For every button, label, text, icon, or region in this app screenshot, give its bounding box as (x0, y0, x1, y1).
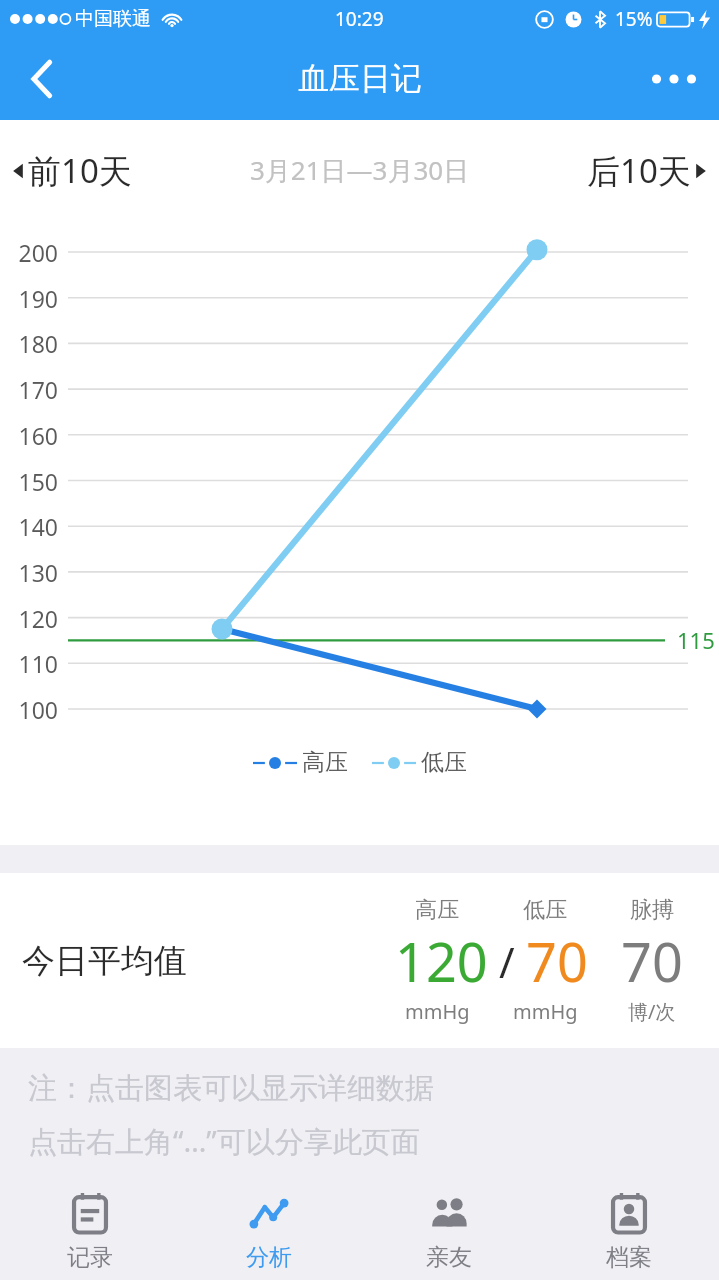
staticText: mmHg (513, 998, 578, 1025)
staticText: 120 (10, 603, 58, 634)
staticText: 200 (10, 237, 58, 268)
button[interactable]: 前10天 (0, 138, 146, 203)
staticText: 血压日记 (298, 59, 422, 98)
staticText: 低压 (523, 896, 567, 924)
staticText: 档案 (606, 1243, 652, 1272)
staticText: 后10天 (587, 148, 691, 193)
staticText: 110 (10, 648, 58, 679)
staticText: 高压 (302, 748, 348, 777)
button[interactable]: More options (629, 37, 719, 120)
staticText: 70 (526, 924, 588, 998)
staticText: 150 (10, 466, 58, 497)
button[interactable]: 分析 (179, 1185, 359, 1280)
staticText: 注：点击图表可以显示详细数据 (28, 1070, 434, 1107)
staticText: 170 (10, 374, 58, 405)
staticText: 点击右上角“…”可以分享此页面 (28, 1121, 420, 1161)
staticText: 70 (621, 924, 683, 998)
button[interactable]: Back (0, 37, 84, 120)
staticText: 140 (10, 511, 58, 542)
staticText: 今日平均值 (22, 940, 187, 982)
staticText: 中国联通 (75, 7, 151, 31)
staticText: 前10天 (28, 148, 132, 193)
staticText: 130 (10, 557, 58, 588)
staticText: 脉搏 (630, 896, 674, 924)
button[interactable]: 今日平均值 (0, 873, 719, 1048)
button[interactable]: 记录 (0, 1185, 179, 1280)
staticText: 100 (10, 694, 58, 725)
staticText: 120 (395, 924, 488, 998)
staticText: 亲友 (426, 1243, 472, 1272)
staticText: 115 (677, 625, 715, 655)
staticText: 190 (10, 283, 58, 314)
staticText: 160 (10, 420, 58, 451)
button[interactable]: 后10天 (573, 138, 719, 203)
button[interactable]: 档案 (539, 1185, 719, 1280)
staticText: 记录 (67, 1243, 113, 1272)
staticText: 10:29 (335, 6, 384, 32)
staticText: / (488, 933, 526, 990)
staticText: 15% (615, 6, 653, 32)
staticText: 低压 (421, 748, 467, 777)
button[interactable]: Blood pressure chart (0, 220, 719, 845)
staticText: 3月21日—3月30日 (250, 152, 470, 188)
staticText: mmHg (405, 998, 470, 1025)
staticText: 高压 (415, 896, 459, 924)
staticText: 博/次 (628, 998, 676, 1025)
button[interactable]: 亲友 (359, 1185, 539, 1280)
staticText: 180 (10, 328, 58, 359)
staticText: 分析 (246, 1243, 292, 1272)
